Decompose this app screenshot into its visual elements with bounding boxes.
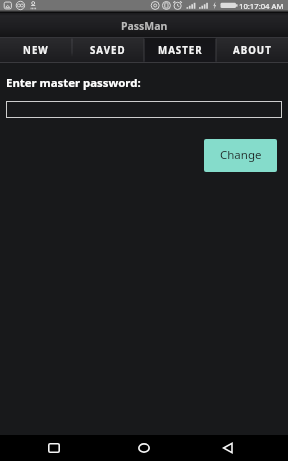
button[interactable]: NEW	[0, 37, 72, 63]
button[interactable]: Back	[205, 435, 250, 461]
staticText: MASTER	[158, 44, 203, 57]
staticText: PassMan	[121, 19, 168, 33]
button[interactable]: SAVED	[72, 37, 144, 63]
staticText: NEW	[23, 44, 49, 57]
staticText: Change	[220, 147, 262, 163]
staticText: ABOUT	[233, 44, 272, 57]
staticText: Enter master password:	[6, 75, 141, 91]
button[interactable]: MASTER	[144, 37, 216, 63]
staticText: SAVED	[90, 44, 126, 57]
button[interactable]: Change	[204, 139, 277, 172]
staticText: 10:17:04 AM	[239, 1, 284, 11]
button[interactable]: ABOUT	[216, 37, 288, 63]
button[interactable]: Home	[121, 435, 166, 461]
button[interactable]: Recent apps	[31, 435, 76, 461]
